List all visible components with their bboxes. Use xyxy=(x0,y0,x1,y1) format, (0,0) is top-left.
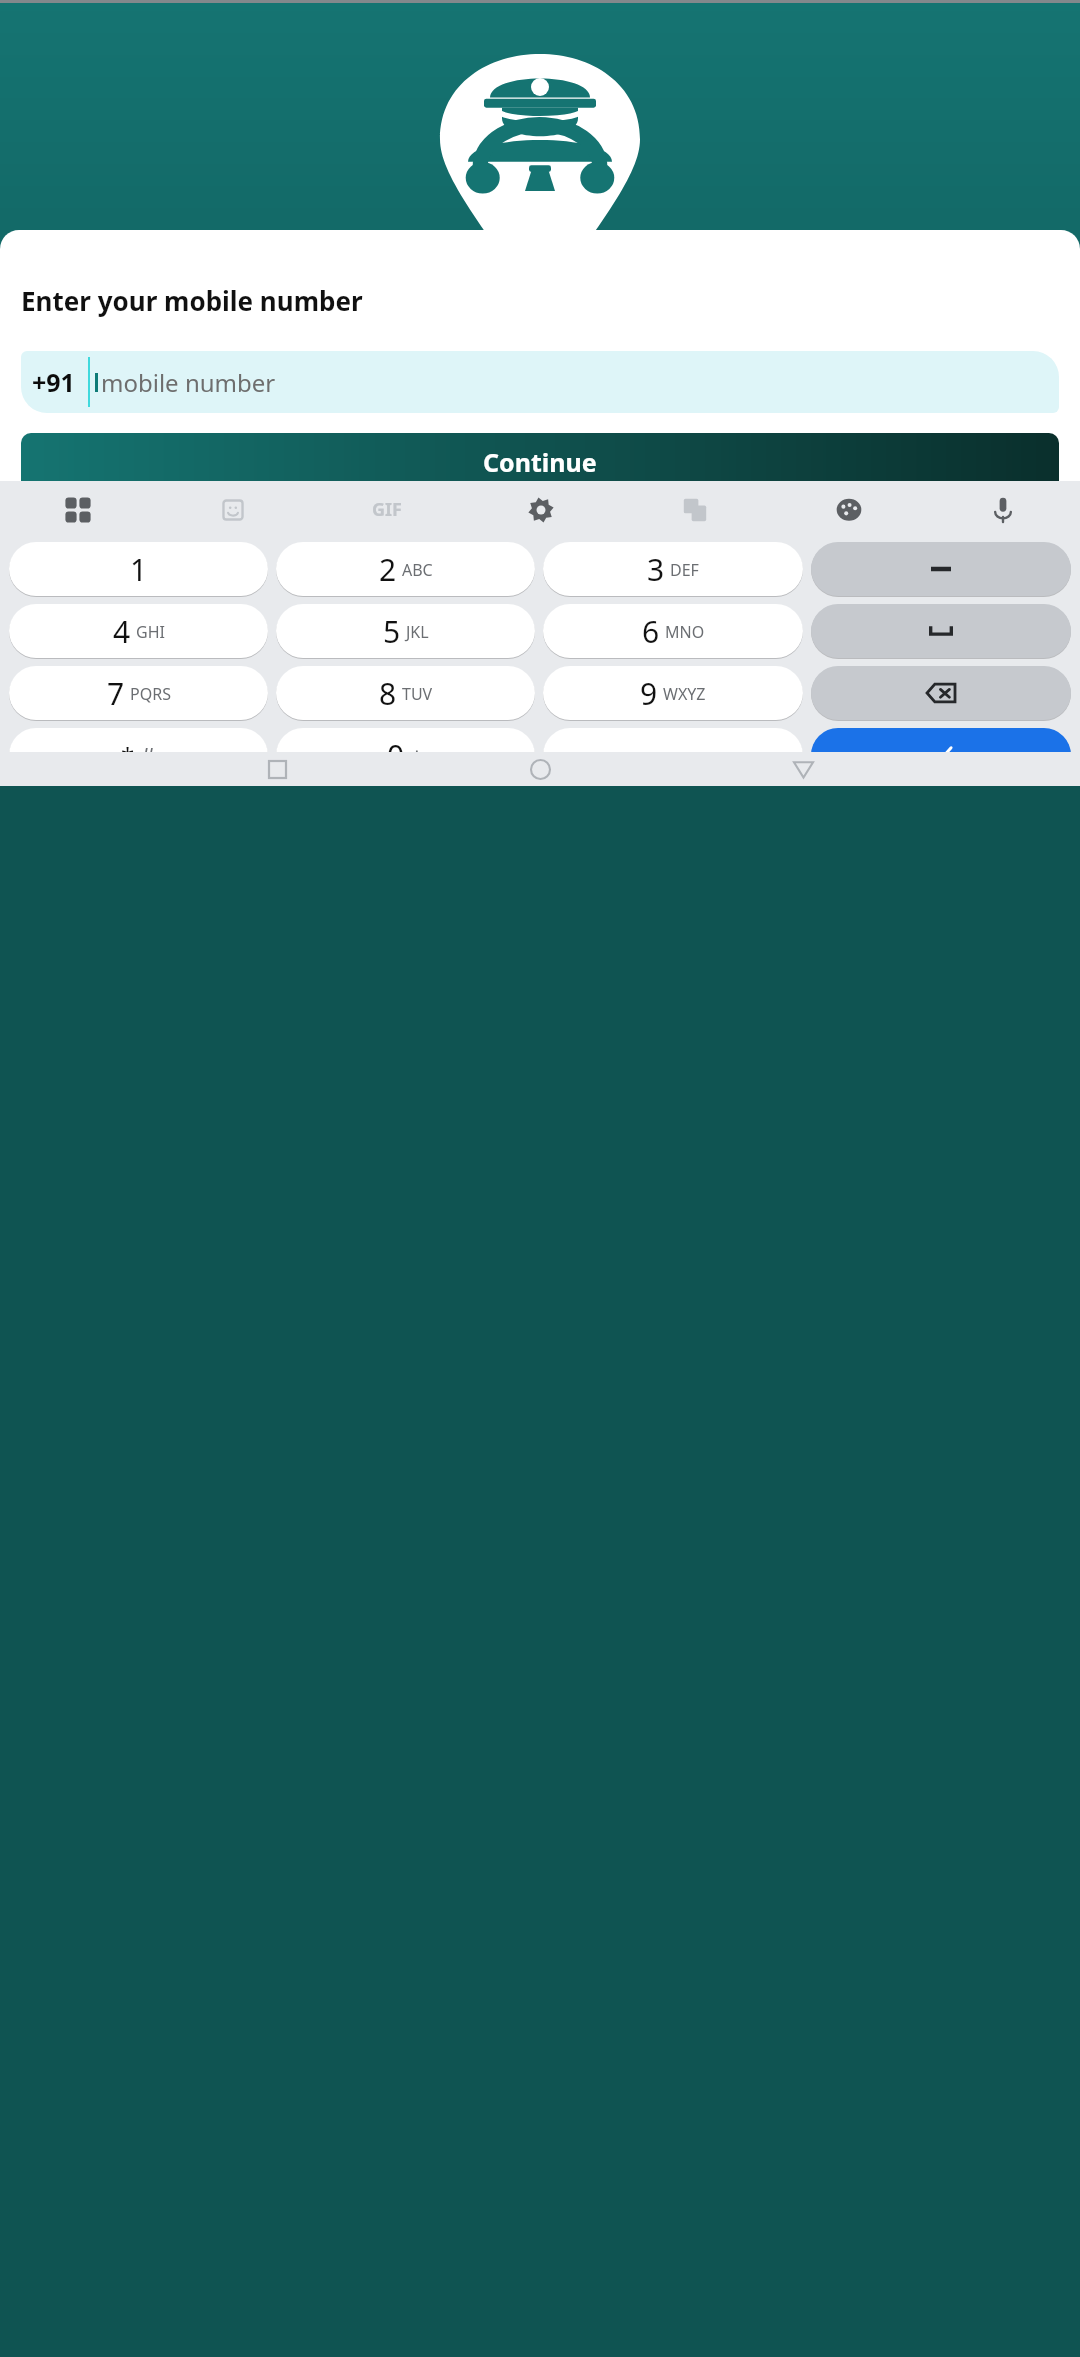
staticText: TUV xyxy=(402,683,433,705)
staticText: PQRS xyxy=(130,683,171,705)
button[interactable]: Dash xyxy=(811,542,1071,596)
staticText: 2 xyxy=(379,549,397,590)
button[interactable]: 3DEF xyxy=(543,542,803,596)
button[interactable]: Stickers xyxy=(155,481,310,538)
staticText: +91 xyxy=(32,365,75,399)
button[interactable]: 8TUV xyxy=(276,666,535,720)
button[interactable]: Enter xyxy=(811,728,1071,782)
button[interactable]: Keyboard modes xyxy=(0,481,155,538)
staticText: MNO xyxy=(665,621,705,643)
staticText: . xyxy=(669,735,678,776)
button[interactable]: Home xyxy=(409,752,672,786)
button[interactable]: 5JKL xyxy=(276,604,535,658)
button[interactable]: Settings xyxy=(464,481,618,538)
staticText: JKL xyxy=(406,621,429,643)
button[interactable]: Continue xyxy=(21,433,1059,491)
button[interactable]: 6MNO xyxy=(543,604,803,658)
staticText: 8 xyxy=(379,673,397,714)
button[interactable]: 9WXYZ xyxy=(543,666,803,720)
button[interactable]: Recents xyxy=(146,752,409,786)
button[interactable]: . xyxy=(543,728,803,782)
button[interactable]: Space xyxy=(811,604,1071,658)
button[interactable]: Backspace xyxy=(811,666,1071,720)
button[interactable]: Back xyxy=(672,752,935,786)
staticText: Enter your mobile number xyxy=(21,283,363,318)
staticText: + xyxy=(410,739,424,772)
staticText: 7 xyxy=(107,673,125,714)
button[interactable]: 1 xyxy=(9,542,268,596)
staticText: # xyxy=(140,739,156,772)
button[interactable]: *# xyxy=(9,728,268,782)
button[interactable]: 7PQRS xyxy=(9,666,268,720)
button[interactable]: 4GHI xyxy=(9,604,268,658)
button[interactable]: GIF xyxy=(310,481,464,538)
button[interactable]: Translate xyxy=(618,481,772,538)
staticText: 0 xyxy=(387,735,405,776)
staticText: 9 xyxy=(640,673,658,714)
staticText: Click 4 Driver xyxy=(399,332,682,391)
button[interactable]: Themes xyxy=(772,481,926,538)
staticText: 5 xyxy=(383,611,401,652)
staticText: 6 xyxy=(642,611,660,652)
staticText: 4 xyxy=(113,611,131,652)
staticText: 1 xyxy=(130,549,148,590)
staticText: WXYZ xyxy=(663,683,706,705)
button[interactable]: 2ABC xyxy=(276,542,535,596)
staticText: * xyxy=(121,739,135,772)
staticText: mobile number xyxy=(101,366,276,399)
staticText: GHI xyxy=(136,621,165,643)
staticText: 3 xyxy=(647,549,665,590)
staticText: GIF xyxy=(372,497,402,522)
button[interactable]: Voice input xyxy=(926,481,1080,538)
staticText: ABC xyxy=(402,559,433,581)
button[interactable]: 0+ xyxy=(276,728,535,782)
button[interactable]: +91 xyxy=(21,351,1059,413)
staticText: Continue xyxy=(483,445,597,479)
staticText: DEF xyxy=(670,559,699,581)
